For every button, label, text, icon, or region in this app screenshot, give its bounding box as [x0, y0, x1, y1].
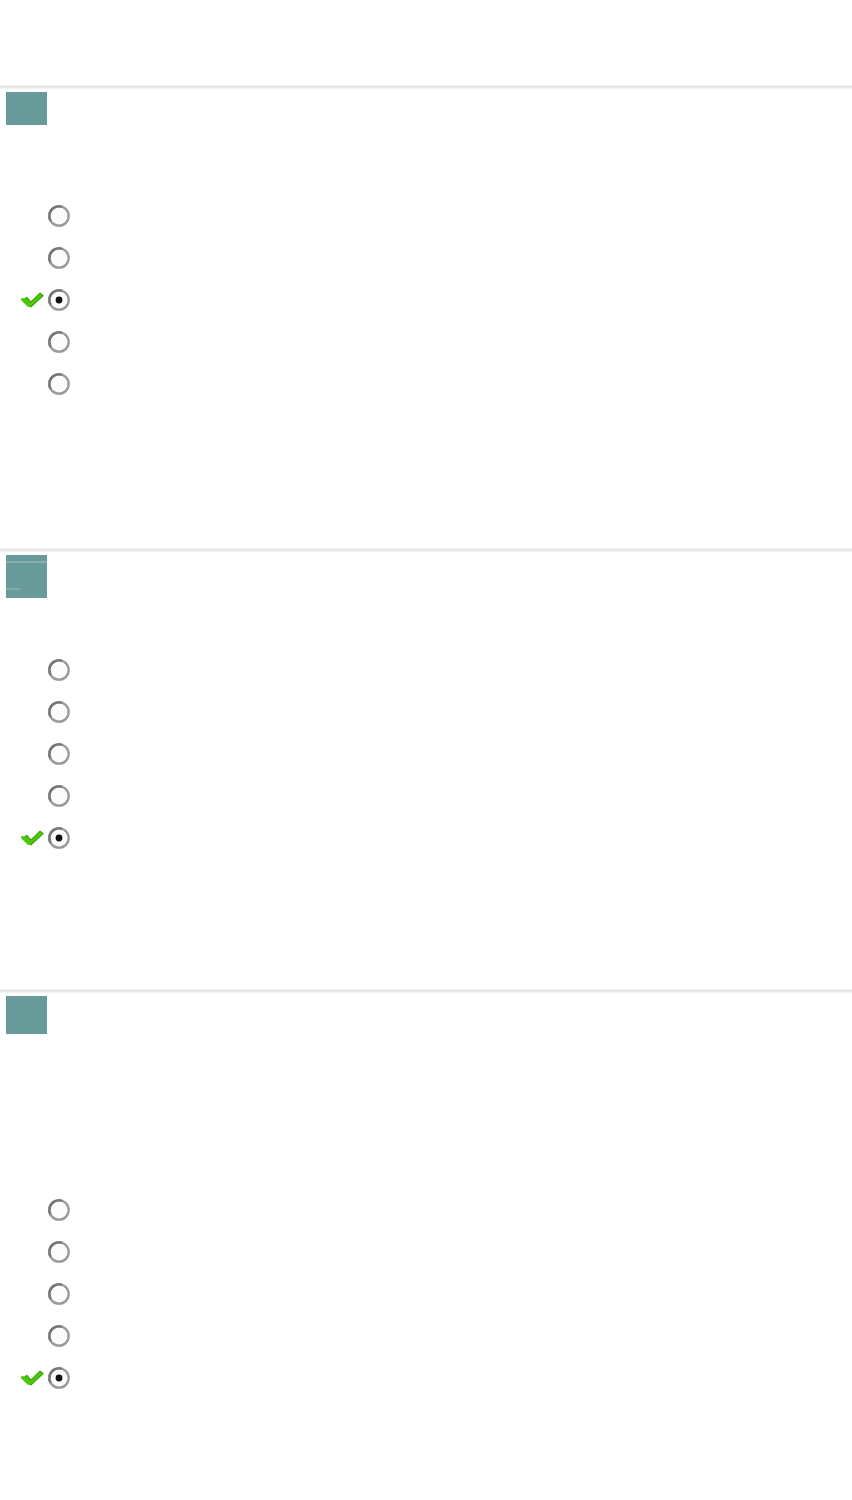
button[interactable] — [0, 649, 852, 691]
button[interactable] — [0, 1315, 852, 1357]
other: Correct answer — [22, 1369, 44, 1387]
button[interactable] — [0, 691, 852, 733]
button[interactable]: Correct answer — [0, 1357, 852, 1399]
button[interactable] — [0, 195, 852, 237]
button[interactable] — [0, 1189, 852, 1231]
button[interactable]: Correct answer — [0, 817, 852, 859]
button[interactable] — [0, 237, 852, 279]
button[interactable] — [0, 1231, 852, 1273]
button[interactable] — [0, 1273, 852, 1315]
button[interactable] — [0, 363, 852, 405]
button[interactable]: Correct answer — [0, 279, 852, 321]
button[interactable] — [0, 321, 852, 363]
other: Correct answer — [22, 291, 44, 309]
button[interactable] — [0, 733, 852, 775]
button[interactable] — [0, 775, 852, 817]
other: Correct answer — [22, 829, 44, 847]
button[interactable] — [6, 555, 47, 598]
